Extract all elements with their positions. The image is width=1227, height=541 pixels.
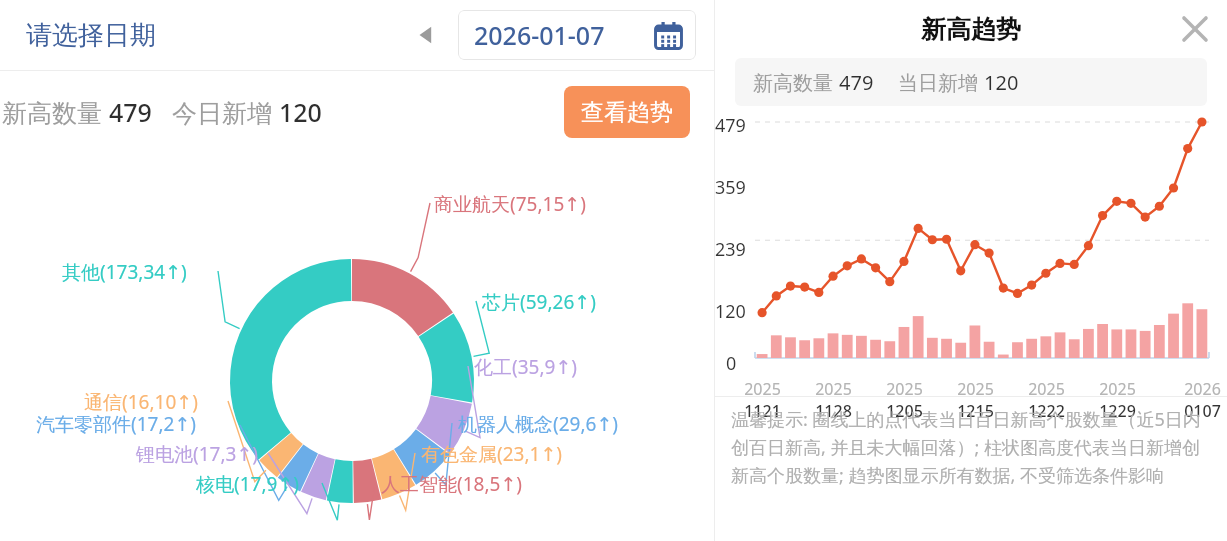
button[interactable]: Previous day	[404, 13, 448, 57]
staticText: 人工智能(18,5↑)	[381, 471, 523, 497]
staticText: 479	[715, 113, 746, 138]
button[interactable]: 查看趋势	[564, 86, 690, 138]
staticText: 239	[715, 237, 746, 262]
staticText: 359	[715, 175, 746, 200]
staticText: 2025	[957, 378, 994, 400]
staticText: 1222	[1028, 400, 1065, 422]
staticText: 2025	[1028, 378, 1065, 400]
staticText: 120	[715, 299, 746, 324]
staticText: 1229	[1099, 400, 1136, 422]
staticText: 有色金属(23,1↑)	[421, 441, 563, 467]
staticText: 通信(16,10↑)	[84, 389, 198, 415]
staticText: 0	[726, 351, 737, 376]
staticText: 479	[839, 69, 874, 96]
staticText: 2026-01-07	[474, 18, 605, 52]
staticText: 新高数量	[753, 69, 839, 96]
staticText: 120	[279, 95, 322, 129]
staticText: 汽车零部件(17,2↑)	[36, 411, 197, 437]
staticText: 0107	[1184, 400, 1221, 422]
staticText: 2026	[1184, 378, 1221, 400]
staticText: 锂电池(17,3↑)	[136, 441, 259, 467]
staticText: 2025	[744, 378, 781, 400]
staticText: 请选择日期	[26, 19, 156, 52]
staticText: 新高趋势	[921, 14, 1021, 45]
staticText: 机器人概念(29,6↑)	[458, 411, 619, 437]
staticText: 1121	[744, 400, 781, 422]
staticText: 化工(35,9↑)	[474, 354, 578, 380]
staticText: 当日新增	[898, 69, 984, 96]
staticText: 其他(173,34↑)	[62, 259, 187, 285]
staticText: 新高数量	[2, 95, 109, 129]
staticText: 今日新增	[172, 95, 279, 129]
staticText: 120	[984, 69, 1019, 96]
staticText: 2025	[1099, 378, 1136, 400]
staticText: 核电(17,9↑)	[196, 471, 300, 497]
staticText: 479	[109, 95, 152, 129]
staticText: 商业航天(75,15↑)	[434, 191, 586, 217]
staticText: 2025	[886, 378, 923, 400]
staticText: 1215	[957, 400, 994, 422]
staticText: 温馨提示: 圈线上的点代表当日百日新高个股数量（近5日内创百日新高, 并且未大幅…	[731, 407, 1215, 488]
staticText: 1128	[815, 400, 852, 422]
staticText: 2025	[815, 378, 852, 400]
staticText: 芯片(59,26↑)	[482, 289, 596, 315]
staticText: 1205	[886, 400, 923, 422]
staticText: 查看趋势	[581, 98, 673, 127]
button[interactable]: Close	[1175, 9, 1215, 49]
button[interactable]: 2026-01-07	[458, 10, 696, 60]
